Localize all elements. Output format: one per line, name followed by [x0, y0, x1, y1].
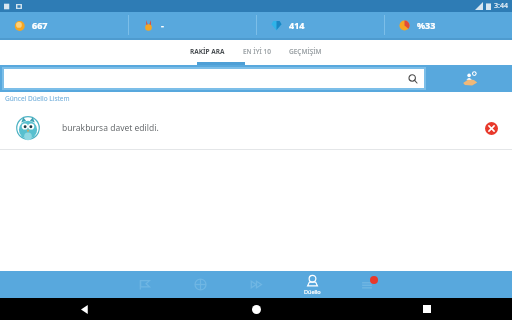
button[interactable]: - [129, 12, 256, 38]
button[interactable]: Cancel invitation [480, 117, 502, 139]
staticText: %33 [417, 19, 436, 31]
button[interactable]: Düello [284, 271, 340, 298]
button[interactable]: GEÇMİŞİM [280, 40, 331, 62]
staticText: 3:44 [494, 1, 508, 11]
staticText: 667 [32, 19, 48, 31]
staticText: 414 [289, 19, 305, 31]
button[interactable]: EN İYİ 10 [234, 40, 280, 62]
button[interactable]: burakbursa davet edildi. [0, 105, 512, 150]
staticText: EN İYİ 10 [243, 47, 271, 56]
button[interactable]: Back [75, 299, 95, 319]
staticText: - [161, 19, 164, 31]
staticText: GEÇMİŞİM [289, 47, 322, 56]
staticText: Düello [304, 288, 321, 295]
button[interactable]: Invite friend [428, 65, 512, 92]
staticText: burakbursa davet edildi. [62, 122, 159, 134]
button[interactable]: Home [246, 299, 266, 319]
staticText: RAKİP ARA [190, 47, 225, 56]
button[interactable]: Menu, 1 notification [340, 271, 396, 298]
button[interactable]: Search [4, 69, 424, 88]
button[interactable]: 667 [0, 12, 128, 38]
button[interactable]: Globe [172, 271, 228, 298]
button[interactable]: Recent apps [417, 299, 437, 319]
button[interactable]: %33 [385, 12, 512, 38]
button[interactable]: RAKİP ARA [181, 40, 234, 62]
other: Search [408, 74, 418, 84]
button[interactable]: Flag [116, 271, 172, 298]
button[interactable]: 414 [257, 12, 384, 38]
staticText: Güncel Düello Listem [5, 94, 70, 103]
button[interactable]: Fast forward [228, 271, 284, 298]
